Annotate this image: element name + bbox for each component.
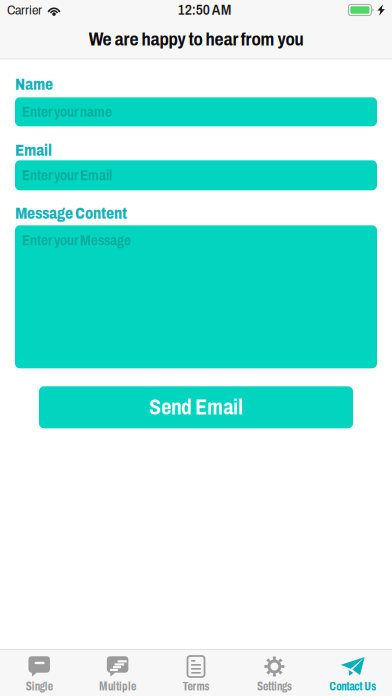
staticText: Send Email: [149, 396, 243, 419]
button[interactable]: Send Email: [39, 386, 353, 428]
staticText: Message Content: [15, 205, 127, 222]
button[interactable]: Enter your Message: [15, 225, 377, 368]
staticText: Enter your Email: [22, 167, 112, 183]
button[interactable]: Single: [0, 649, 78, 696]
staticText: Enter your name: [22, 104, 112, 120]
staticText: 12:50 AM: [178, 2, 232, 18]
staticText: Settings: [257, 680, 292, 693]
staticText: We are happy to hear from you: [88, 29, 303, 49]
staticText: Name: [15, 76, 53, 93]
button[interactable]: Contact Us: [314, 649, 392, 696]
button[interactable]: Enter your name: [15, 97, 377, 126]
staticText: Email: [15, 142, 52, 159]
button[interactable]: Terms: [157, 649, 235, 696]
button[interactable]: Settings: [235, 649, 314, 696]
staticText: Carrier: [7, 3, 42, 17]
staticText: Single: [26, 680, 53, 693]
staticText: Terms: [182, 680, 209, 693]
staticText: Multiple: [99, 680, 136, 693]
staticText: Contact Us: [329, 680, 376, 693]
staticText: Enter your Message: [22, 232, 131, 248]
button[interactable]: Enter your Email: [15, 160, 377, 190]
button[interactable]: Multiple: [78, 649, 157, 696]
